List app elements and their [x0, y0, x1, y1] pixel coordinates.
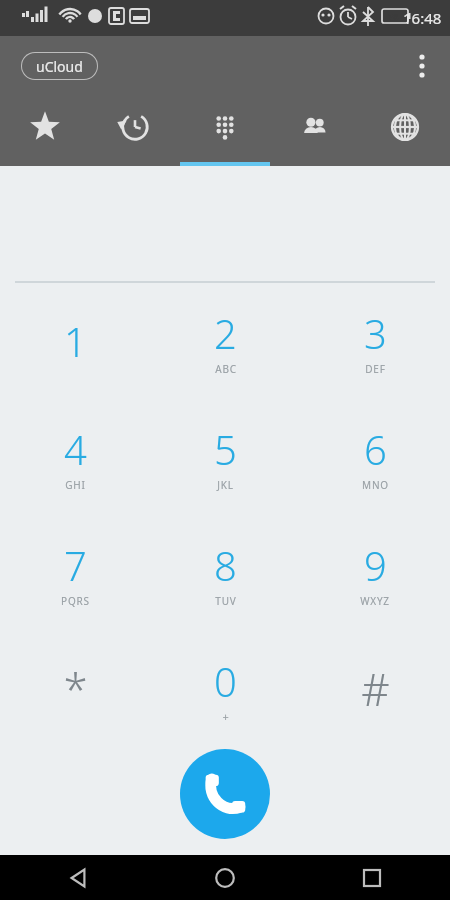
- button[interactable]: Call: [180, 749, 270, 839]
- button[interactable]: Favourites: [0, 96, 90, 166]
- button[interactable]: 5: [150, 399, 300, 515]
- staticText: 16:48: [403, 8, 442, 28]
- staticText: JKL: [217, 478, 234, 492]
- staticText: uCloud: [36, 57, 83, 76]
- staticText: PQRS: [61, 594, 90, 608]
- staticText: +: [222, 709, 230, 724]
- button[interactable]: Home: [201, 855, 249, 900]
- staticText: 1: [64, 314, 87, 368]
- staticText: 6: [364, 422, 387, 476]
- staticText: ABC: [215, 362, 237, 376]
- button[interactable]: 9: [300, 515, 450, 631]
- button[interactable]: 4: [0, 399, 150, 515]
- button[interactable]: Global: [360, 96, 450, 166]
- button[interactable]: Contacts: [270, 96, 360, 166]
- button[interactable]: Recents: [348, 855, 396, 900]
- staticText: WXYZ: [360, 594, 390, 608]
- staticText: TUV: [215, 594, 237, 608]
- staticText: 7: [64, 538, 87, 592]
- staticText: 4: [64, 422, 87, 476]
- button[interactable]: Dialpad: [180, 96, 270, 166]
- staticText: *: [63, 659, 88, 719]
- staticText: GHI: [65, 478, 86, 492]
- staticText: #: [361, 659, 390, 719]
- staticText: 8: [214, 538, 237, 592]
- button[interactable]: Back: [54, 855, 102, 900]
- button[interactable]: 2: [150, 283, 300, 399]
- button[interactable]: uCloud: [20, 51, 99, 81]
- staticText: 5: [214, 422, 237, 476]
- staticText: 3: [364, 306, 387, 360]
- button[interactable]: #: [300, 631, 450, 747]
- button[interactable]: 0: [150, 631, 300, 747]
- button[interactable]: More options: [402, 46, 442, 86]
- button[interactable]: 6: [300, 399, 450, 515]
- staticText: DEF: [365, 362, 386, 376]
- staticText: MNO: [362, 478, 389, 492]
- staticText: 9: [364, 538, 387, 592]
- staticText: 0: [214, 654, 237, 708]
- button[interactable]: *: [0, 631, 150, 747]
- button[interactable]: 1: [0, 283, 150, 399]
- button[interactable]: Recents: [90, 96, 180, 166]
- button[interactable]: 7: [0, 515, 150, 631]
- staticText: 2: [214, 306, 237, 360]
- button[interactable]: 8: [150, 515, 300, 631]
- button[interactable]: 3: [300, 283, 450, 399]
